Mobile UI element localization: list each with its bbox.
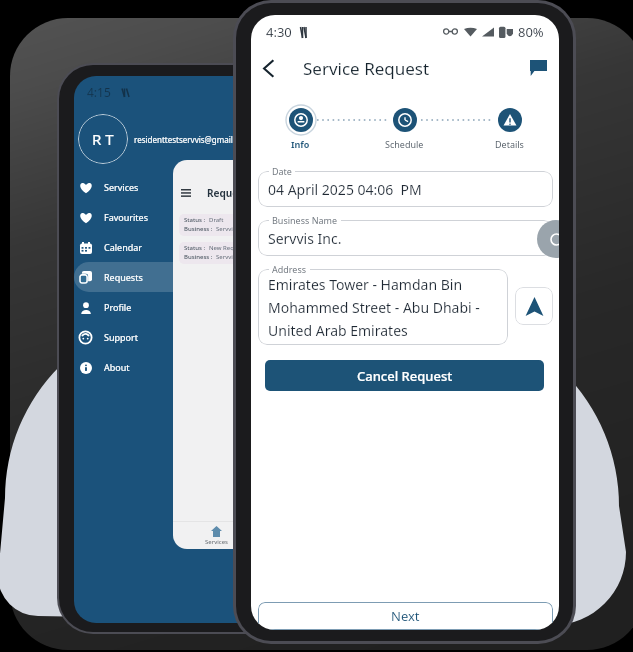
staticText: Address [272, 263, 307, 275]
button[interactable]: Navigate [515, 287, 553, 325]
staticText: Business : [184, 225, 213, 233]
staticText: Schedule [385, 138, 424, 150]
staticText: Requests [207, 186, 253, 200]
button[interactable]: Servvis Inc. [258, 220, 553, 256]
staticText: Servvi [216, 253, 233, 261]
button[interactable]: Support [74, 322, 330, 352]
staticText: Next [391, 607, 420, 625]
staticText: Profile [104, 301, 132, 313]
button[interactable]: Favourites [74, 202, 330, 232]
staticText: Date [272, 165, 292, 177]
button[interactable]: Services [74, 172, 330, 202]
button[interactable]: Emirates Tower - Hamdan Bin Mohammed Str… [258, 269, 508, 345]
button[interactable]: Cancel Request [265, 360, 544, 391]
staticText: Servvi [216, 225, 233, 233]
button[interactable]: About [74, 352, 330, 382]
staticText: Details [495, 138, 524, 150]
staticText: 4:15 [87, 84, 111, 100]
staticText: Service Request [303, 57, 430, 80]
button[interactable]: Next [258, 602, 553, 630]
button[interactable]: Messages [523, 53, 553, 83]
staticText: About [104, 361, 130, 373]
button[interactable]: More [537, 220, 559, 258]
staticText: Business : [184, 253, 213, 261]
staticText: Calendar [104, 241, 142, 253]
staticText: Support [104, 331, 138, 343]
staticText: Status : [184, 244, 206, 252]
staticText: Draft [209, 216, 224, 224]
staticText: 80% [518, 23, 544, 41]
staticText: Cancel Request [357, 367, 453, 385]
staticText: Services [104, 181, 139, 193]
button[interactable]: Services [173, 522, 260, 549]
button[interactable]: Back [253, 53, 283, 83]
button[interactable]: Step [284, 103, 317, 136]
staticText: Status : [184, 216, 206, 224]
staticText: residenttestservvis@gmail.c [134, 134, 239, 145]
button[interactable]: 04 April 2025 04:06 PM [258, 171, 553, 207]
staticText: 04 April 2025 04:06 PM [268, 180, 422, 199]
staticText: Services [205, 538, 228, 546]
staticText: Emirates Tower - Hamdan Bin Mohammed Str… [268, 275, 498, 340]
staticText: 4:30 [266, 23, 292, 41]
button[interactable]: Requests [74, 262, 330, 292]
staticText: Business Name [272, 214, 338, 226]
staticText: R T [92, 129, 114, 149]
button[interactable]: Status : [179, 242, 342, 264]
button[interactable]: Profile [74, 292, 330, 322]
button[interactable]: Calendar [74, 232, 330, 262]
staticText: Requests [104, 271, 143, 283]
button[interactable]: Step [493, 103, 526, 136]
staticText: Servvis Inc. [268, 229, 342, 248]
staticText: Info [291, 138, 310, 150]
button[interactable]: Status : [179, 214, 342, 236]
staticText: Favourites [104, 211, 148, 223]
button[interactable]: Step [388, 103, 421, 136]
staticText: New Req [209, 244, 234, 252]
